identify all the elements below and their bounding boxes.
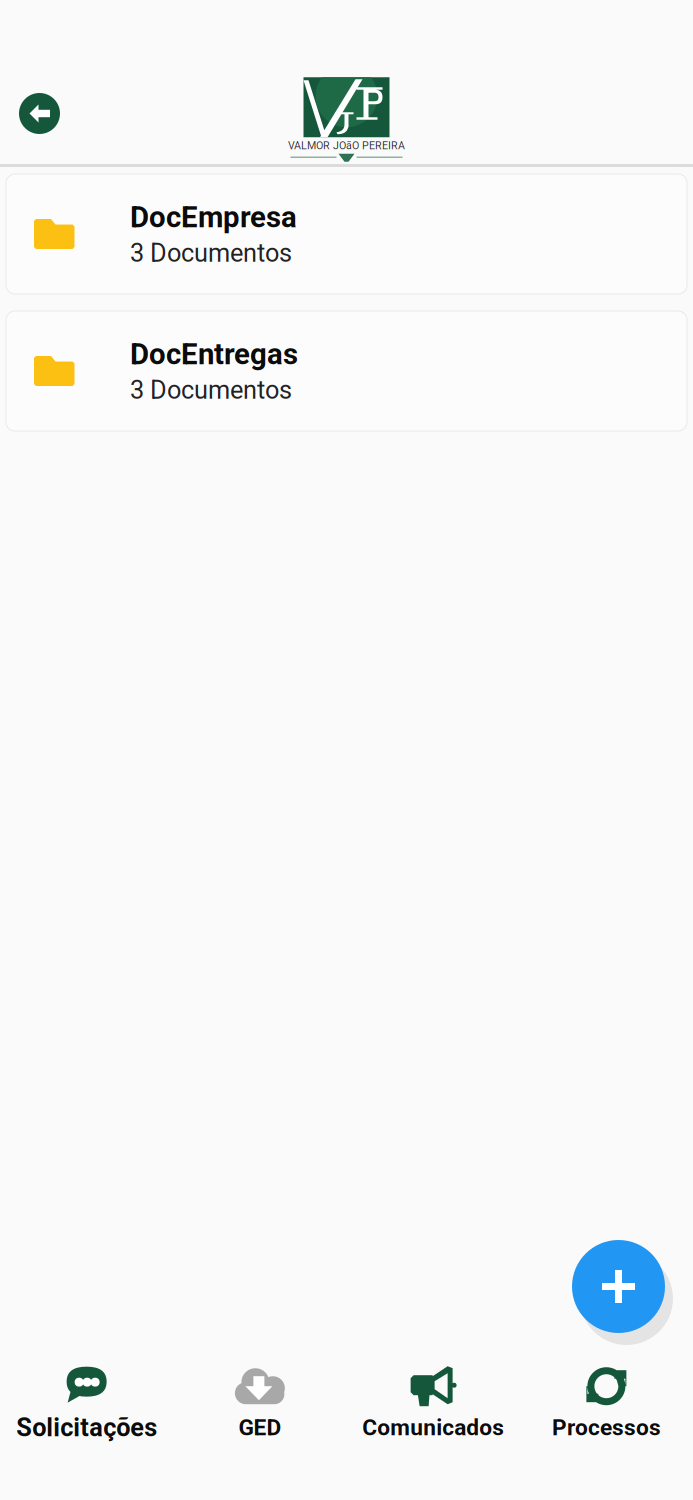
staticText: Solicitações xyxy=(16,1413,157,1442)
button[interactable]: DocEntregas xyxy=(6,311,687,431)
button[interactable]: Add xyxy=(572,1240,673,1345)
staticText: GED xyxy=(238,1414,281,1441)
button[interactable]: Processos xyxy=(520,1364,693,1442)
staticText: Comunicados xyxy=(362,1414,504,1441)
button[interactable]: Back xyxy=(0,0,60,134)
staticText: Processos xyxy=(552,1414,661,1441)
button[interactable]: Comunicados xyxy=(346,1364,520,1442)
staticText: 3 Documentos xyxy=(130,238,292,268)
button[interactable]: GED xyxy=(173,1364,346,1442)
staticText: DocEmpresa xyxy=(130,200,297,234)
button[interactable]: DocEmpresa xyxy=(6,174,687,294)
staticText: 3 Documentos xyxy=(130,375,292,405)
staticText: VALMOR JOãO PEREIRA xyxy=(288,139,405,152)
staticText: DocEntregas xyxy=(130,337,298,371)
button[interactable]: Solicitações xyxy=(0,1364,173,1442)
